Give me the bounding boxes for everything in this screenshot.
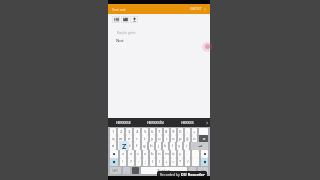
button[interactable]: j: [156, 142, 161, 150]
button[interactable]: h: [149, 142, 154, 150]
staticText: 4: [136, 129, 139, 135]
button[interactable]: 9: [171, 128, 176, 135]
button[interactable]: [198, 167, 208, 174]
staticText: o: [172, 136, 175, 142]
staticText: e: [128, 136, 131, 142]
button[interactable]: .: [189, 167, 196, 174]
button[interactable]: d: [126, 142, 132, 150]
button[interactable]: c: [136, 150, 141, 158]
staticText: =: [172, 159, 175, 165]
button[interactable]: e: [126, 135, 132, 142]
button[interactable]: l: [170, 142, 175, 150]
button[interactable]: KAYDET: [190, 7, 202, 11]
staticText: ö: [172, 151, 175, 157]
button[interactable]: More suggestions: [203, 118, 210, 127]
button[interactable]: ,: [123, 167, 130, 174]
staticText: ü: [193, 136, 196, 142]
button[interactable]: HERKES: [171, 118, 203, 127]
button[interactable]: ç: [178, 150, 183, 158]
button[interactable]: [199, 135, 208, 142]
button[interactable]: ;: [143, 158, 148, 166]
button[interactable]: r: [134, 135, 140, 142]
button[interactable]: f: [134, 142, 140, 150]
button[interactable]: ş: [177, 142, 182, 150]
button[interactable]: !#1: [110, 167, 121, 174]
button[interactable]: q: [110, 135, 116, 142]
button[interactable]: w: [118, 135, 124, 142]
button[interactable]: 0: [178, 128, 183, 135]
button[interactable]: i: [184, 142, 189, 150]
button[interactable]: 5: [142, 128, 148, 135]
button[interactable]: 3: [126, 128, 132, 135]
staticText: b: [151, 151, 154, 157]
button[interactable]: .: [185, 150, 190, 158]
button[interactable]: HERKESİN: [139, 118, 171, 127]
button[interactable]: k: [163, 142, 168, 150]
button[interactable]: Checklist: [112, 16, 120, 23]
button[interactable]: HERKESE: [108, 118, 139, 127]
button[interactable]: u: [157, 135, 162, 142]
staticText: -: [187, 129, 189, 135]
button[interactable]: -: [185, 128, 190, 135]
button[interactable]: ı: [164, 135, 169, 142]
button[interactable]: ğ: [185, 135, 190, 142]
button[interactable]: 2: [118, 128, 124, 135]
staticText: HERKES: [181, 120, 194, 125]
button[interactable]: +: [192, 128, 197, 135]
button[interactable]: p: [178, 135, 183, 142]
button[interactable]: =: [171, 158, 176, 166]
staticText: 0: [179, 129, 182, 135]
staticText: 9: [172, 129, 175, 135]
button[interactable]: [110, 158, 118, 166]
button[interactable]: [110, 150, 118, 158]
button[interactable]: *: [178, 158, 183, 166]
button[interactable]: [192, 158, 199, 166]
button[interactable]: y: [150, 135, 155, 142]
staticText: u: [158, 136, 161, 142]
button[interactable]: [192, 150, 199, 158]
button[interactable]: m: [164, 150, 169, 158]
staticText: ı: [166, 136, 168, 142]
button[interactable]: ?: [128, 158, 134, 166]
staticText: ;: [145, 159, 147, 165]
button[interactable]: +: [164, 158, 169, 166]
button[interactable]: [201, 158, 208, 166]
button[interactable]: More options: [202, 6, 208, 12]
staticText: f: [136, 143, 138, 149]
button[interactable]: 4: [134, 128, 140, 135]
button[interactable]: 6: [150, 128, 155, 135]
button[interactable]: ü: [192, 135, 197, 142]
button[interactable]: :: [136, 158, 141, 166]
staticText: 6: [151, 129, 154, 135]
button[interactable]: Voice input: [130, 16, 138, 23]
button[interactable]: g: [142, 142, 147, 150]
button[interactable]: z: [120, 150, 126, 158]
staticText: !: [122, 159, 124, 165]
button[interactable]: x: [128, 150, 134, 158]
staticText: DU Recorder: [181, 172, 205, 177]
button[interactable]: 8: [164, 128, 169, 135]
button[interactable]: s: [118, 142, 124, 150]
button[interactable]: o: [171, 135, 176, 142]
button[interactable]: (: [150, 158, 155, 166]
button[interactable]: [191, 142, 208, 150]
button[interactable]: [201, 150, 208, 158]
button[interactable]: ): [157, 158, 162, 166]
button[interactable]: Türkçe: [141, 167, 187, 174]
button[interactable]: a: [110, 142, 116, 150]
button[interactable]: Insert image: [121, 16, 129, 23]
button[interactable]: 1: [110, 128, 116, 135]
button[interactable]: v: [143, 150, 148, 158]
button[interactable]: b: [150, 150, 155, 158]
button[interactable]: 7: [157, 128, 162, 135]
button[interactable]: n: [157, 150, 162, 158]
staticText: g: [143, 143, 146, 149]
button[interactable]: [199, 128, 208, 135]
button[interactable]: /: [185, 158, 190, 166]
button[interactable]: Yeni not: [112, 7, 126, 12]
button[interactable]: !: [120, 158, 126, 166]
button[interactable]: ö: [171, 150, 176, 158]
staticText: *: [179, 159, 182, 165]
button[interactable]: t: [142, 135, 148, 142]
button[interactable]: [132, 167, 139, 174]
